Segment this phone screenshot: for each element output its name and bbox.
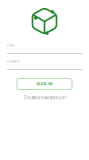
button[interactable]: Create a new account [23,95,65,100]
staticText: Create a new account [23,95,65,100]
staticText: Email [7,44,15,47]
staticText: Password [7,60,20,63]
button[interactable]: SIGN IN [16,78,72,90]
staticText: SIGN IN [36,82,53,86]
